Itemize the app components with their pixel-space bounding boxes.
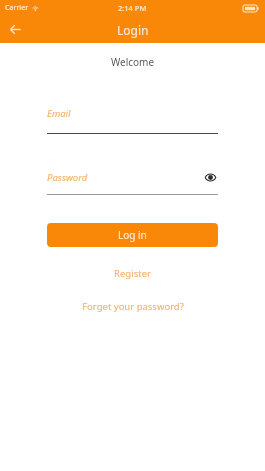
staticText: Password [47, 171, 88, 184]
staticText: Email [47, 107, 71, 120]
staticText: 2:14 PM [118, 3, 147, 13]
button[interactable]: Show password [202, 169, 218, 185]
staticText: Login [117, 22, 149, 38]
staticText: Forget your password? [82, 300, 184, 313]
staticText: Register [114, 267, 151, 280]
staticText: Log in [118, 228, 147, 242]
button[interactable]: Back [0, 16, 30, 43]
button[interactable]: Log in [47, 223, 218, 247]
button[interactable]: Register [0, 264, 265, 283]
button[interactable]: Password [47, 169, 218, 195]
staticText: Welcome [0, 55, 265, 69]
staticText: Carrier [5, 3, 29, 13]
button[interactable]: Email [47, 107, 218, 134]
button[interactable]: Forget your password? [0, 297, 265, 316]
